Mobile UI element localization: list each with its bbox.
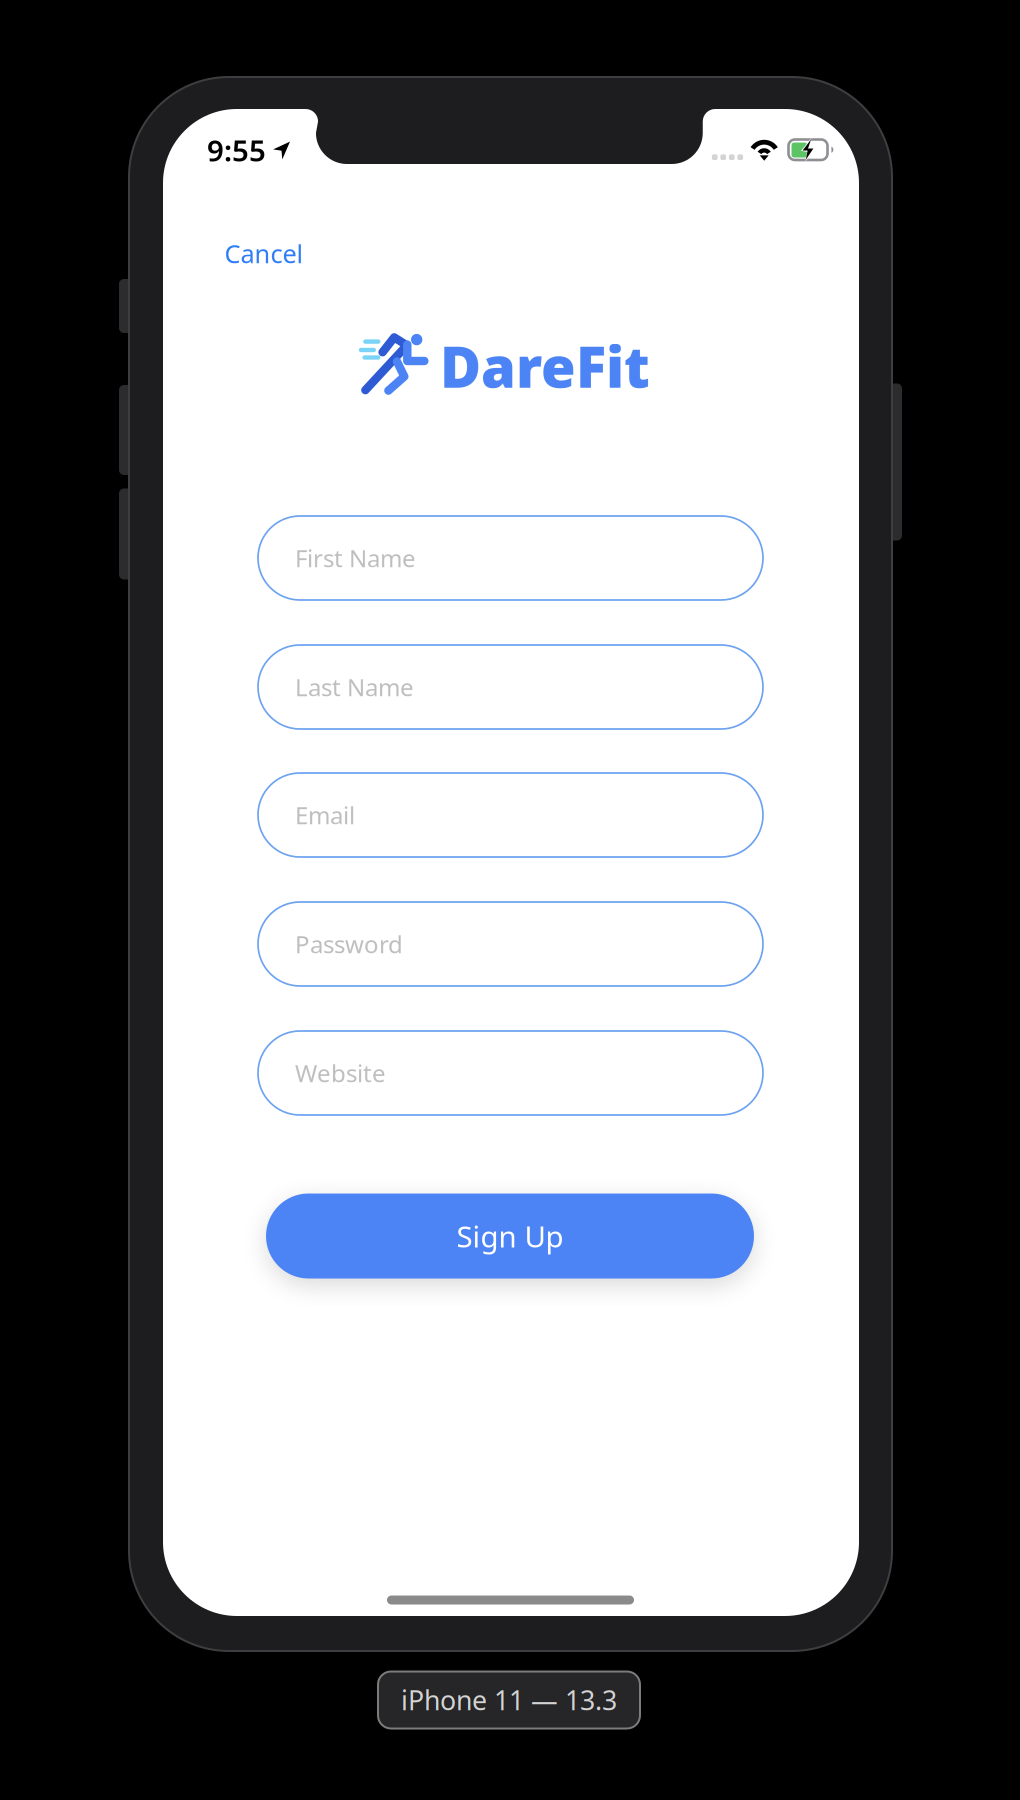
staticText: Cancel: [224, 237, 303, 270]
staticText: Website: [295, 1057, 386, 1089]
staticText: Sign Up: [456, 1216, 563, 1255]
staticText: iPhone 11 — 13.3: [401, 1682, 617, 1718]
button[interactable]: Password: [258, 902, 763, 986]
button[interactable]: First Name: [258, 516, 763, 600]
button[interactable]: Cancel: [212, 226, 315, 281]
staticText: DareFit: [440, 329, 650, 403]
button[interactable]: Email: [258, 773, 763, 857]
staticText: Last Name: [295, 671, 414, 703]
button[interactable]: Last Name: [258, 645, 763, 729]
staticText: 9:55: [207, 130, 266, 169]
button[interactable]: Website: [258, 1031, 763, 1115]
staticText: Email: [295, 799, 355, 831]
staticText: First Name: [295, 542, 416, 574]
button[interactable]: Sign Up: [266, 1193, 754, 1278]
button[interactable]: iPhone 11 — 13.3: [378, 1671, 640, 1728]
staticText: Password: [295, 928, 403, 960]
